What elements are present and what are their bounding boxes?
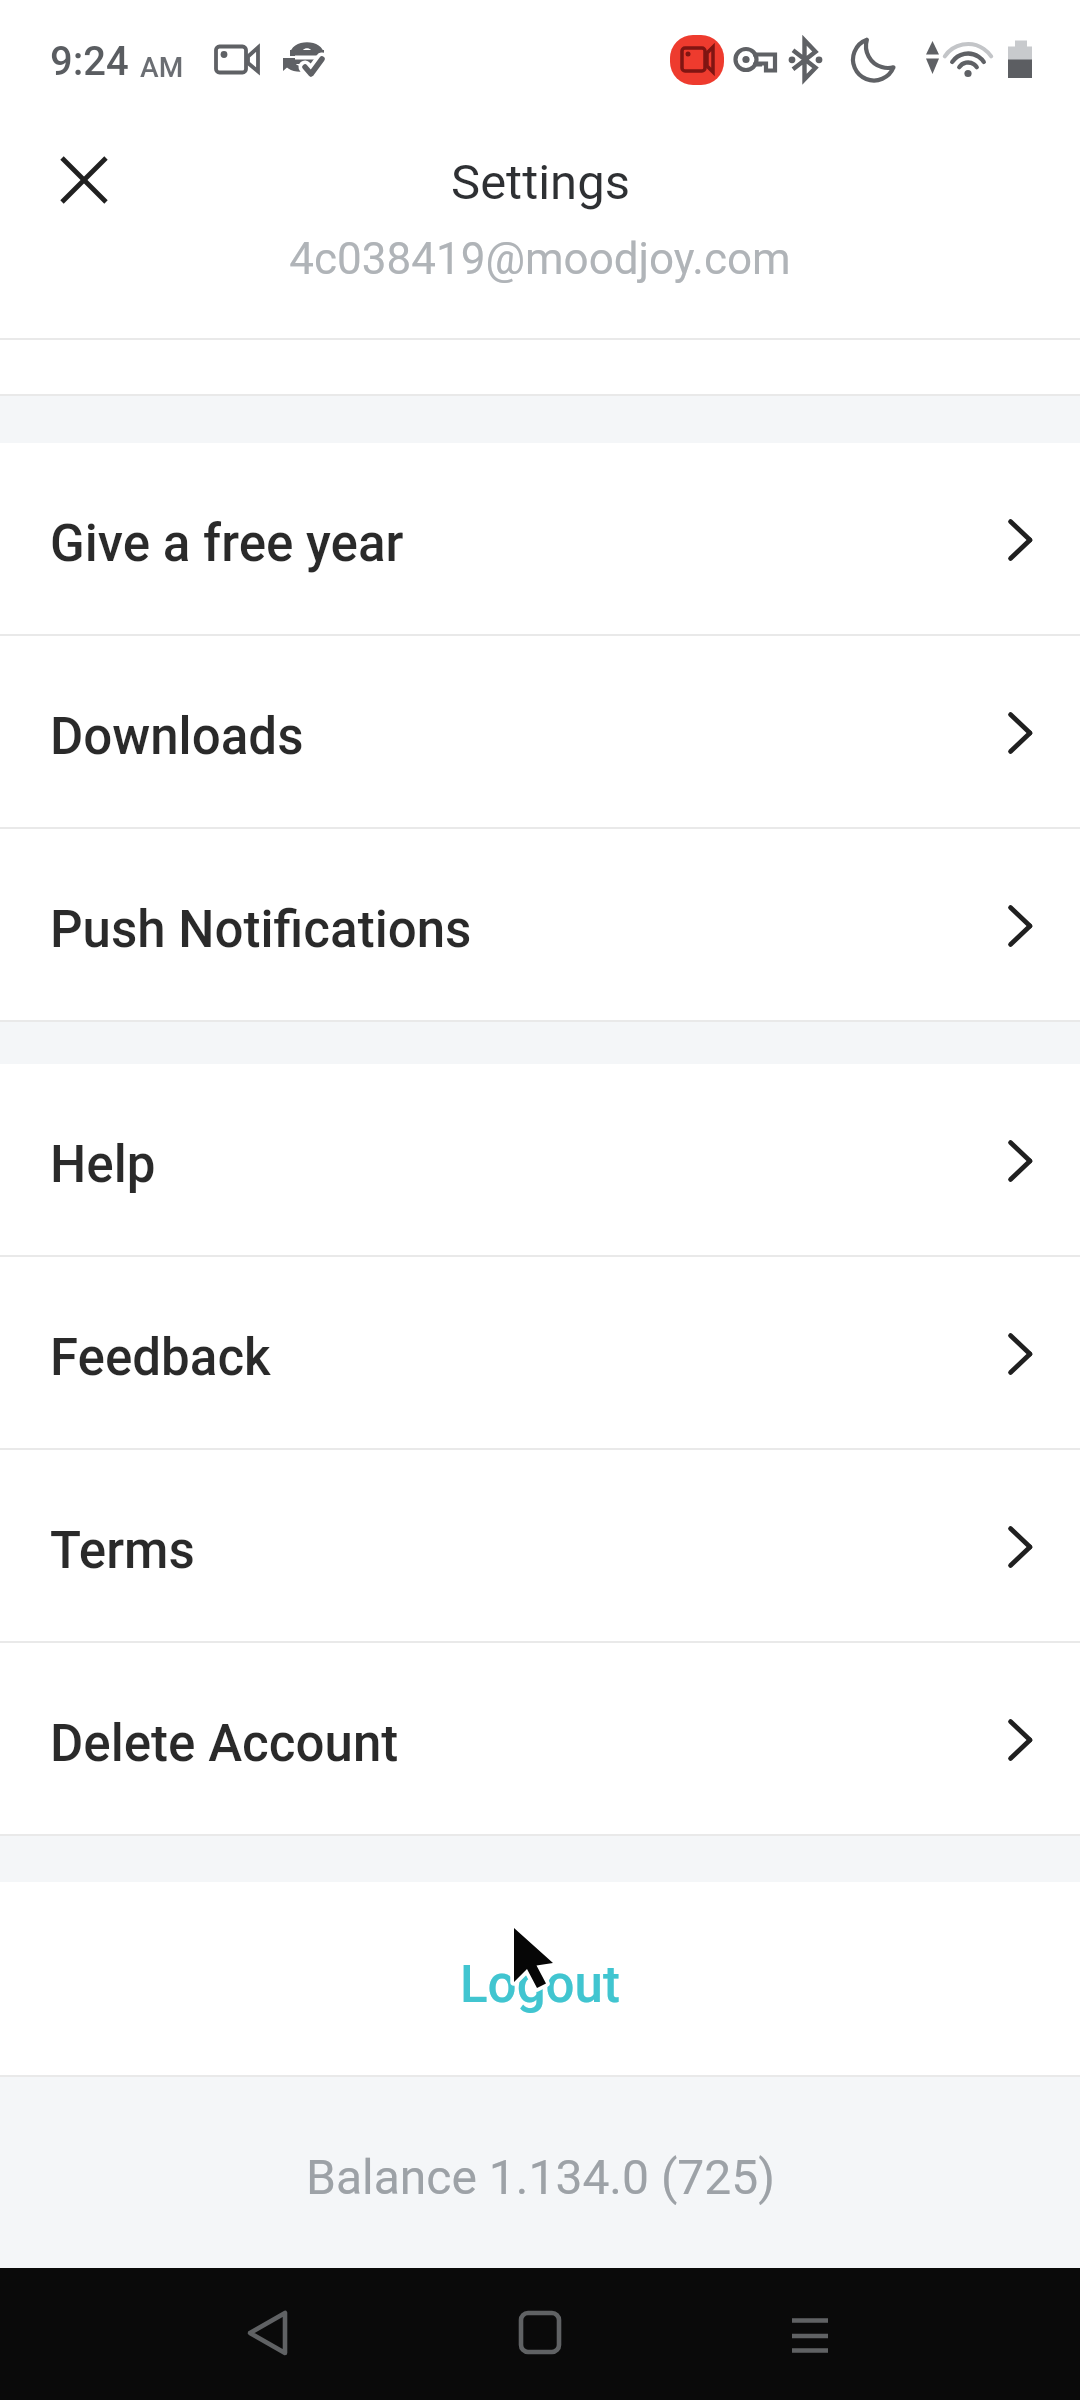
staticText: Settings	[451, 154, 630, 211]
button[interactable]: Terms	[0, 1450, 1080, 1641]
button[interactable]: Logout	[0, 1882, 1080, 2075]
staticText: Downloads	[50, 707, 304, 767]
button[interactable]: Help	[0, 1064, 1080, 1255]
staticText: Balance 1.134.0 (725)	[306, 2149, 775, 2205]
button[interactable]: Back	[207, 2273, 327, 2393]
button[interactable]: Feedback	[0, 1257, 1080, 1448]
button[interactable]: Recents	[750, 2273, 870, 2393]
staticText: AM	[140, 51, 184, 84]
staticText: Delete Account	[50, 1714, 399, 1774]
button[interactable]: Push Notifications	[0, 829, 1080, 1020]
staticText: Feedback	[50, 1328, 271, 1388]
staticText: Push Notifications	[50, 900, 472, 960]
button[interactable]: Downloads	[0, 636, 1080, 827]
staticText: Give a free year	[50, 514, 404, 574]
staticText: Terms	[50, 1521, 195, 1581]
button[interactable]: Delete Account	[0, 1643, 1080, 1834]
staticText: Logout	[460, 1955, 620, 2015]
staticText: 4c038419@moodjoy.com	[289, 233, 791, 285]
button[interactable]: Give a free year	[0, 443, 1080, 634]
staticText: 9:24	[50, 38, 129, 85]
button[interactable]: Home	[480, 2273, 600, 2393]
staticText: Help	[50, 1135, 156, 1195]
button[interactable]: Close	[38, 134, 130, 226]
